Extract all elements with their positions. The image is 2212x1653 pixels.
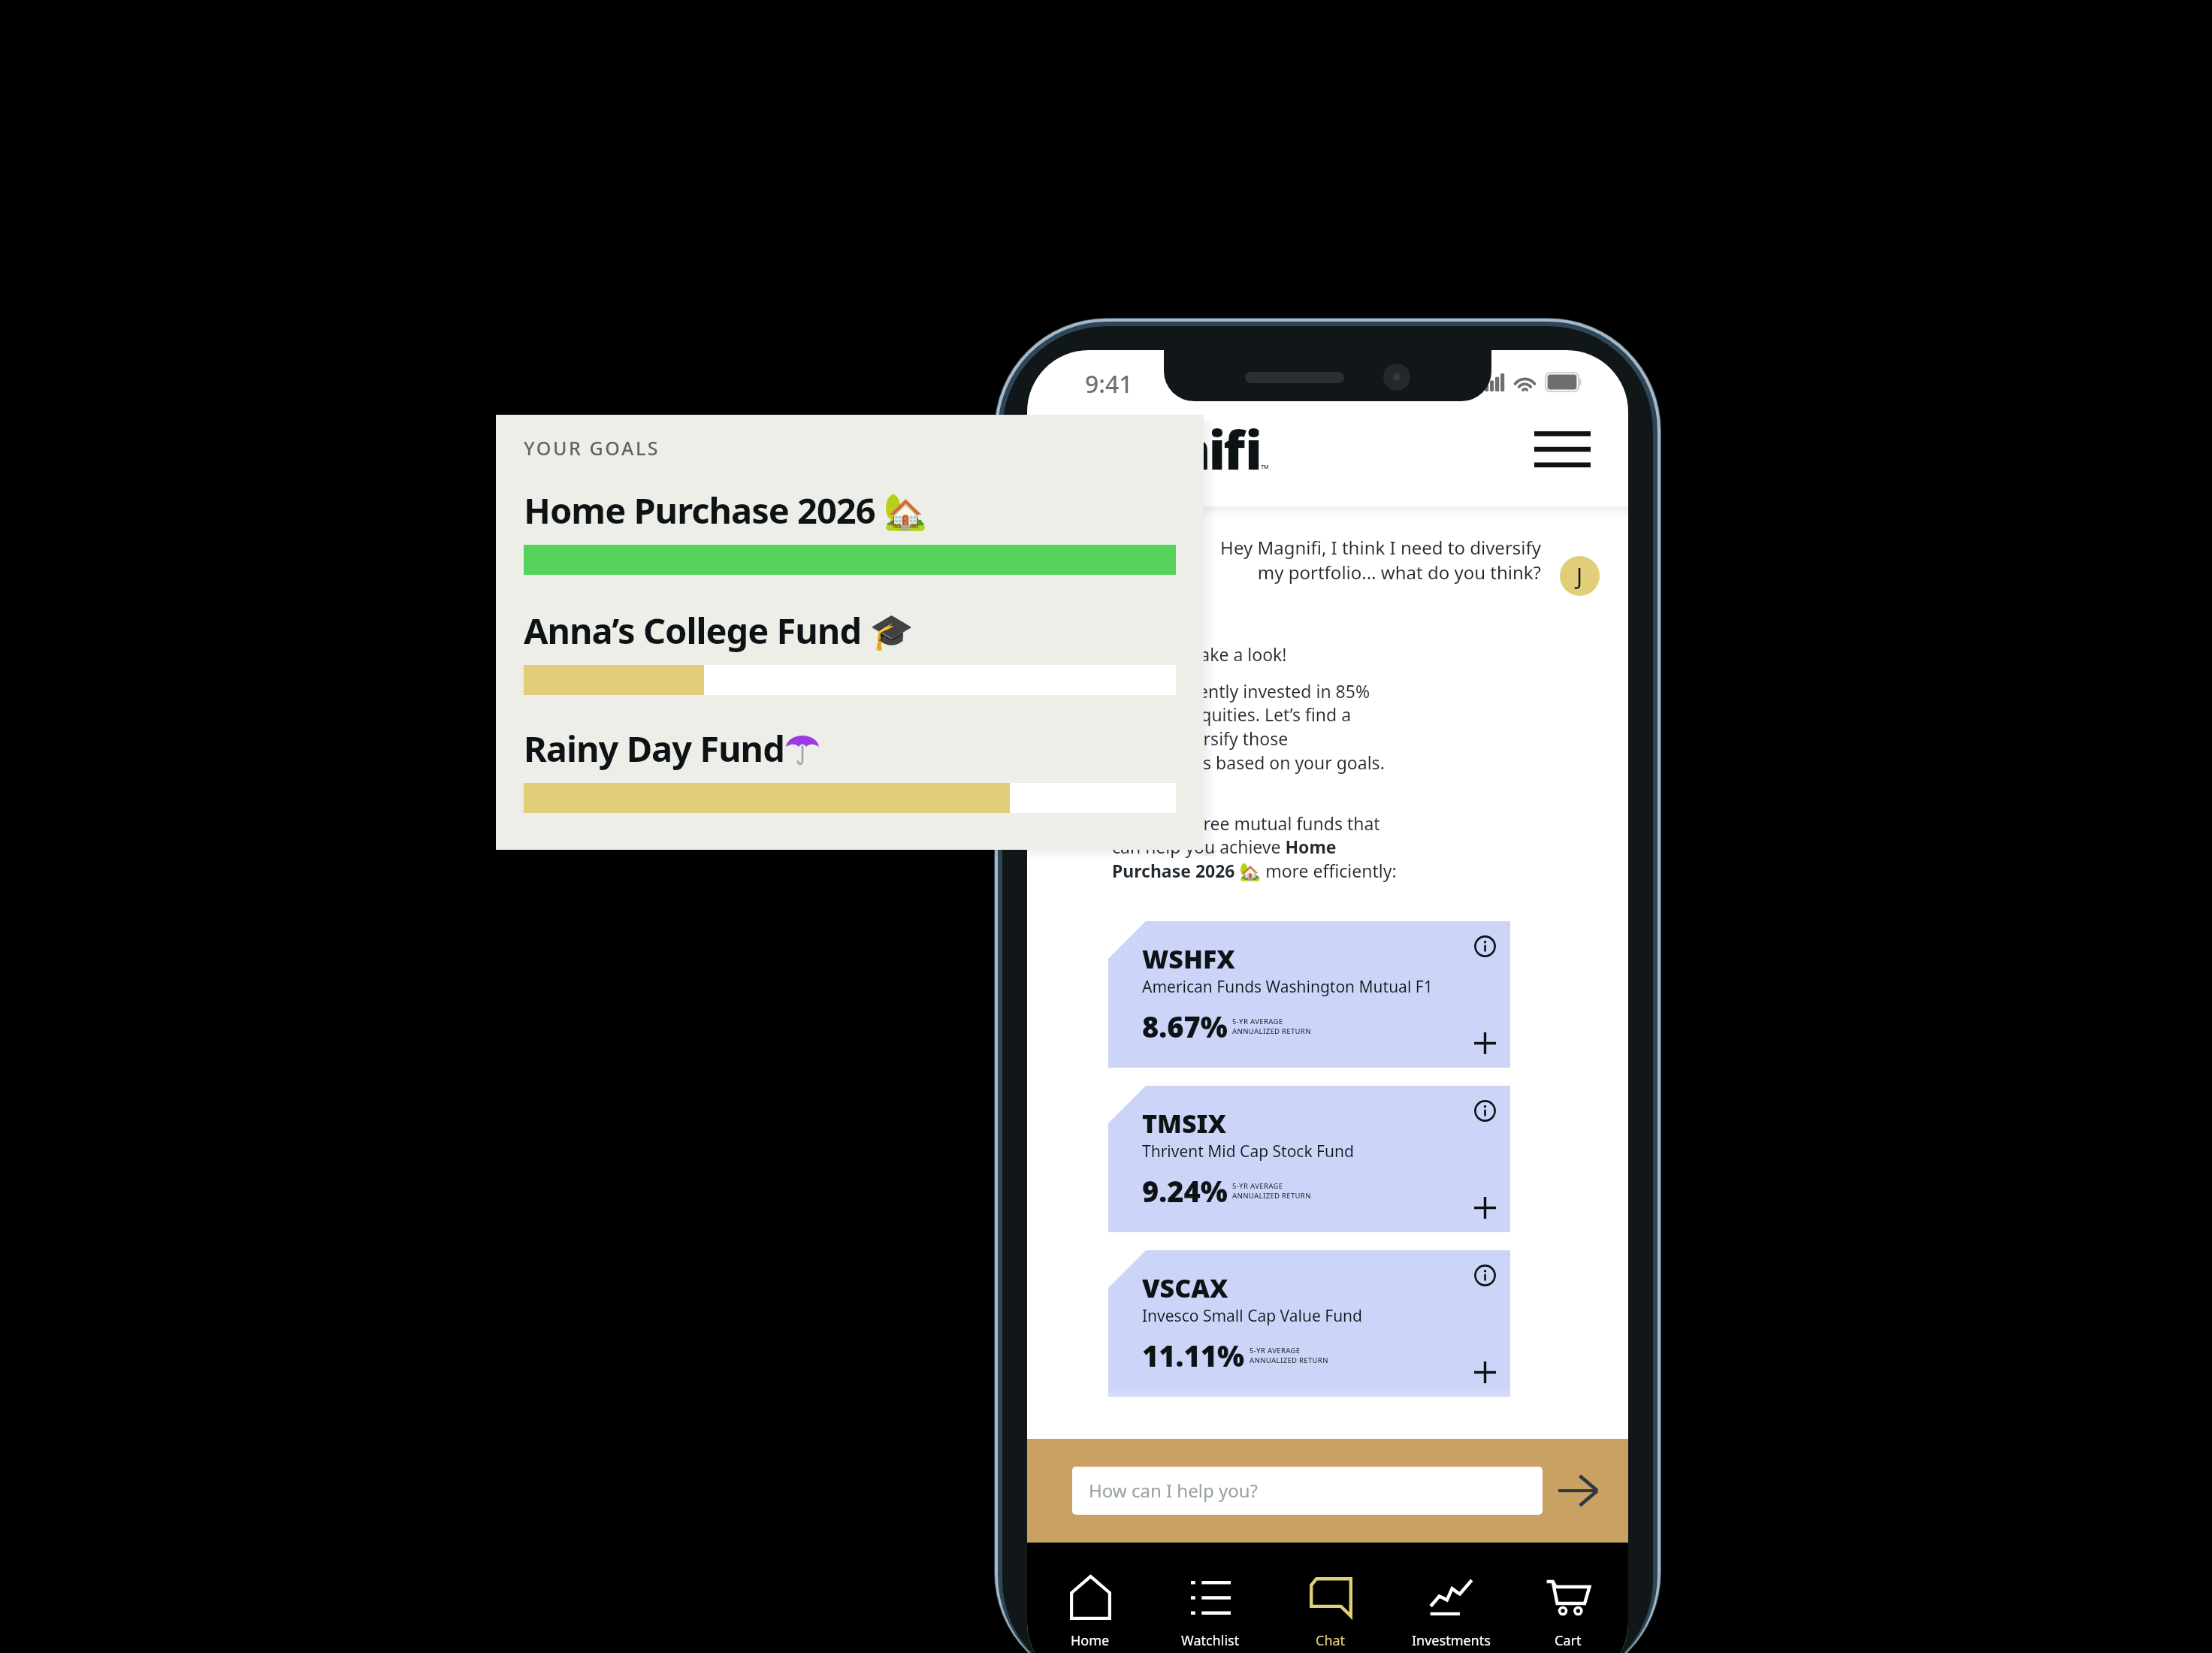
staticText: magnifi [1063, 413, 1260, 485]
staticText: 11.11% [1142, 1336, 1245, 1375]
button[interactable]: Chat [1271, 1574, 1391, 1650]
staticText: Rainy Day Fund [524, 724, 784, 772]
button[interactable]: WSHFX [1108, 921, 1510, 1068]
staticText: Here are three mutual funds that can hel… [1112, 811, 1397, 883]
staticText: Cart [1555, 1631, 1582, 1650]
staticText: 5-YR AVERAGE ANNUALIZED RETURN [1232, 1017, 1311, 1036]
staticText: WSHFX [1142, 941, 1235, 976]
staticText: Anna’s College Fund 🎓 [524, 606, 913, 654]
button[interactable]: Add fund [1464, 1352, 1505, 1392]
staticText: YOUR GOALS [524, 435, 660, 461]
staticText: TMSIX [1142, 1106, 1227, 1141]
staticText: ™ [1261, 461, 1269, 476]
staticText: Hey Magnifi, I think I need to diversify… [1220, 535, 1541, 585]
button[interactable]: Fund info [1467, 1257, 1503, 1293]
button[interactable]: Fund info [1467, 928, 1503, 964]
staticText: 9:41 [1085, 367, 1133, 400]
button[interactable]: How can I help you? [1072, 1467, 1543, 1515]
staticText: Investments [1412, 1631, 1491, 1650]
staticText: 5-YR AVERAGE ANNUALIZED RETURN [1232, 1181, 1311, 1201]
staticText: Chat [1316, 1631, 1346, 1650]
button[interactable]: Investments [1391, 1574, 1511, 1650]
button[interactable]: VSCAX [1108, 1250, 1510, 1397]
staticText: Thrivent Mid Cap Stock Fund [1142, 1141, 1354, 1162]
staticText: J [1576, 561, 1583, 591]
button[interactable]: Menu [1529, 416, 1595, 482]
staticText: How can I help you? [1089, 1478, 1258, 1503]
staticText: You’re currently invested in 85% large c… [1112, 679, 1385, 775]
staticText: Home Purchase 2026 🏡 [524, 486, 927, 534]
staticText: VSCAX [1142, 1271, 1228, 1305]
staticText: 9.24% [1142, 1171, 1228, 1210]
button[interactable]: Anna’s College Fund 🎓 [524, 606, 1176, 695]
button[interactable]: Watchlist [1150, 1574, 1271, 1650]
button[interactable]: TMSIX [1108, 1086, 1510, 1232]
button[interactable]: Rainy Day Fund [524, 724, 1176, 813]
staticText: 5-YR AVERAGE ANNUALIZED RETURN [1250, 1346, 1328, 1365]
button[interactable]: Send [1543, 1439, 1613, 1543]
button[interactable]: Add fund [1464, 1187, 1505, 1228]
staticText: 8.67% [1142, 1007, 1228, 1046]
staticText: Sure, let’s take a look! [1112, 642, 1287, 666]
button[interactable]: Home Purchase 2026 🏡 [524, 486, 1176, 575]
button[interactable]: Cart [1511, 1574, 1625, 1650]
staticText: American Funds Washington Mutual F1 [1142, 976, 1433, 998]
staticText: Home [1071, 1631, 1110, 1650]
staticText: Invesco Small Cap Value Fund [1142, 1305, 1363, 1327]
button[interactable]: Add fund [1464, 1023, 1505, 1063]
staticText: Watchlist [1181, 1631, 1240, 1650]
button[interactable]: Fund info [1467, 1092, 1503, 1129]
button[interactable]: Home [1030, 1574, 1150, 1650]
